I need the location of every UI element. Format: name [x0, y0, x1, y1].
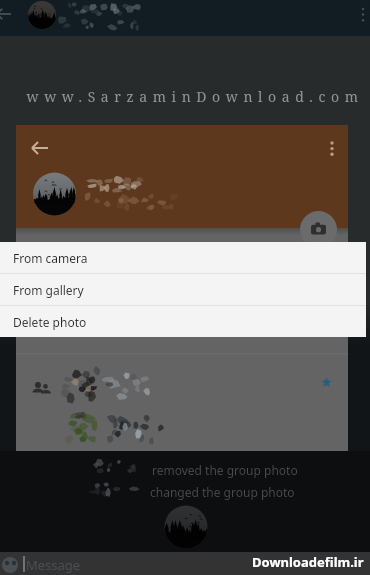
button[interactable]: From camera: [0, 242, 366, 273]
button[interactable]: Delete photo: [0, 306, 366, 337]
button[interactable]: Change photo: [300, 211, 337, 248]
staticText: changed the group photo: [150, 484, 295, 500]
staticText: From gallery: [13, 282, 84, 298]
button[interactable]: From gallery: [0, 274, 366, 305]
staticText: Delete photo: [13, 314, 87, 330]
staticText: Message: [26, 556, 81, 574]
staticText: From camera: [13, 250, 88, 266]
staticText: removed the group photo: [152, 462, 298, 478]
staticText: www.SarzaminDownload.com: [10, 87, 370, 106]
staticText: Downloadefilm.ir: [252, 553, 364, 571]
button[interactable]: Message: [0, 552, 370, 575]
